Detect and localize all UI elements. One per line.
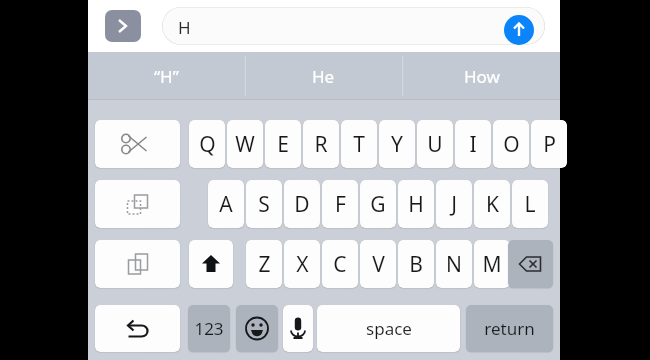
- staticText: F: [335, 190, 346, 219]
- button[interactable]: Q: [189, 120, 225, 168]
- staticText: H: [178, 16, 191, 39]
- button[interactable]: Send: [504, 15, 534, 45]
- button[interactable]: L: [512, 180, 548, 228]
- staticText: Y: [391, 130, 403, 159]
- button[interactable]: return: [466, 305, 553, 352]
- button[interactable]: He: [245, 52, 402, 100]
- button[interactable]: Undo: [95, 305, 180, 352]
- staticText: C: [333, 250, 347, 279]
- button[interactable]: Forward: [105, 10, 141, 42]
- button[interactable]: space: [317, 305, 460, 352]
- staticText: H: [408, 190, 424, 219]
- button[interactable]: S: [246, 180, 282, 228]
- staticText: I: [469, 130, 477, 159]
- button[interactable]: T: [341, 120, 377, 168]
- button[interactable]: H: [398, 180, 434, 228]
- button[interactable]: J: [436, 180, 472, 228]
- button[interactable]: A: [208, 180, 244, 228]
- button[interactable]: Backspace: [508, 240, 553, 288]
- button[interactable]: Z: [246, 240, 282, 288]
- button[interactable]: Y: [379, 120, 415, 168]
- staticText: Q: [199, 130, 216, 159]
- staticText: N: [446, 250, 462, 279]
- staticText: space: [366, 317, 412, 340]
- button[interactable]: How: [403, 52, 560, 100]
- staticText: R: [314, 130, 328, 159]
- button[interactable]: Cut: [95, 120, 180, 168]
- staticText: X: [296, 250, 309, 279]
- staticText: 123: [194, 317, 224, 340]
- button[interactable]: Emoji: [236, 305, 278, 352]
- button[interactable]: R: [303, 120, 339, 168]
- staticText: He: [312, 65, 335, 88]
- staticText: L: [524, 190, 536, 219]
- button[interactable]: Paste: [95, 240, 180, 288]
- button[interactable]: C: [322, 240, 358, 288]
- button[interactable]: M: [474, 240, 510, 288]
- button[interactable]: “H”: [88, 52, 245, 100]
- button[interactable]: 123: [188, 305, 230, 352]
- button[interactable]: I: [455, 120, 491, 168]
- button[interactable]: P: [531, 120, 567, 168]
- button[interactable]: B: [398, 240, 434, 288]
- button[interactable]: V: [360, 240, 396, 288]
- button[interactable]: U: [417, 120, 453, 168]
- button[interactable]: H: [162, 7, 545, 45]
- staticText: M: [482, 250, 502, 279]
- staticText: G: [370, 190, 386, 219]
- button[interactable]: E: [265, 120, 301, 168]
- button[interactable]: G: [360, 180, 396, 228]
- staticText: Z: [258, 250, 271, 279]
- staticText: P: [543, 130, 556, 159]
- staticText: B: [409, 250, 423, 279]
- staticText: K: [486, 190, 499, 219]
- button[interactable]: N: [436, 240, 472, 288]
- button[interactable]: Shift: [189, 240, 233, 288]
- staticText: How: [464, 65, 500, 88]
- staticText: D: [294, 190, 310, 219]
- staticText: T: [353, 130, 365, 159]
- button[interactable]: K: [474, 180, 510, 228]
- staticText: “H”: [154, 65, 179, 88]
- button[interactable]: Copy: [95, 180, 180, 228]
- staticText: W: [235, 130, 255, 159]
- staticText: E: [277, 130, 289, 159]
- button[interactable]: F: [322, 180, 358, 228]
- staticText: S: [258, 190, 270, 219]
- staticText: A: [219, 190, 233, 219]
- button[interactable]: Dictate: [283, 305, 313, 352]
- staticText: U: [427, 130, 443, 159]
- button[interactable]: D: [284, 180, 320, 228]
- button[interactable]: W: [227, 120, 263, 168]
- staticText: J: [451, 190, 457, 219]
- staticText: return: [484, 317, 535, 340]
- button[interactable]: X: [284, 240, 320, 288]
- staticText: V: [372, 250, 385, 279]
- staticText: O: [503, 130, 520, 159]
- button[interactable]: O: [493, 120, 529, 168]
